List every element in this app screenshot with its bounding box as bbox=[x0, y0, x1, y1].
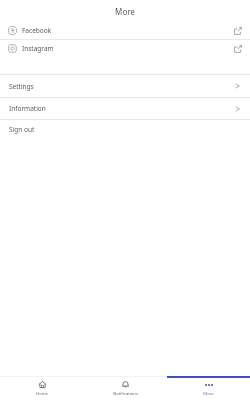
staticText: More bbox=[115, 6, 135, 17]
button[interactable]: Information bbox=[0, 98, 250, 119]
other: Open Facebook in browser bbox=[233, 26, 243, 36]
staticText: Facebook bbox=[22, 26, 52, 35]
button[interactable]: Settings bbox=[0, 75, 250, 97]
button[interactable]: More bbox=[167, 376, 250, 400]
staticText: Settings bbox=[9, 82, 34, 91]
button[interactable]: Sign out bbox=[0, 120, 250, 139]
staticText: Notifications bbox=[113, 391, 138, 397]
staticText: Sign out bbox=[9, 125, 35, 134]
staticText: More bbox=[203, 391, 214, 397]
staticText: Home bbox=[36, 391, 48, 397]
button[interactable]: Home bbox=[0, 376, 84, 400]
button[interactable]: Notifications bbox=[84, 376, 167, 400]
staticText: Instagram bbox=[22, 44, 54, 53]
staticText: Information bbox=[9, 104, 46, 113]
button[interactable]: Facebook bbox=[0, 22, 250, 39]
other: Open Instagram in browser bbox=[233, 44, 243, 54]
button[interactable]: Instagram bbox=[0, 40, 250, 57]
